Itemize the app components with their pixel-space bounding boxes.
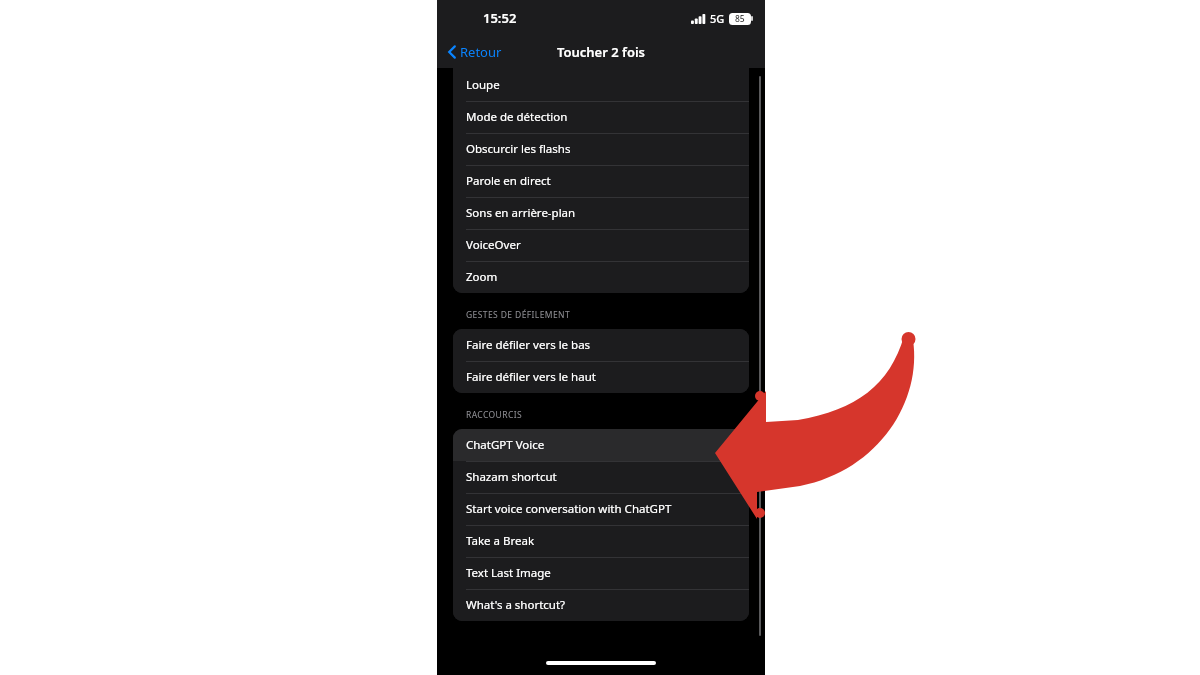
button[interactable]: Shazam shortcut (453, 461, 749, 493)
staticText: Retour (460, 43, 502, 61)
staticText: 5G (710, 11, 725, 26)
staticText: GESTES DE DÉFILEMENT (466, 309, 571, 321)
staticText: 15:52 (483, 9, 517, 27)
button[interactable]: Faire défiler vers le bas (453, 329, 749, 361)
staticText: Loupe (466, 77, 500, 93)
staticText: Zoom (466, 269, 498, 285)
staticText: Mode de détection (466, 109, 568, 125)
staticText: Text Last Image (466, 565, 551, 581)
staticText: Faire défiler vers le haut (466, 369, 596, 385)
button[interactable]: Zoom (453, 261, 749, 293)
button[interactable]: Start voice conversation with ChatGPT (453, 493, 749, 525)
staticText: ChatGPT Voice (466, 437, 545, 453)
button[interactable]: Obscurcir les flashs (453, 133, 749, 165)
staticText: Parole en direct (466, 173, 551, 189)
staticText: 85 (735, 13, 745, 25)
button[interactable]: Faire défiler vers le haut (453, 361, 749, 393)
button[interactable]: ChatGPT Voice (453, 429, 749, 461)
staticText: Sons en arrière-plan (466, 205, 576, 221)
button[interactable]: VoiceOver (453, 229, 749, 261)
button[interactable]: Text Last Image (453, 557, 749, 589)
staticText: Toucher 2 fois (557, 43, 645, 61)
staticText: Take a Break (466, 533, 535, 549)
button[interactable]: Sons en arrière-plan (453, 197, 749, 229)
other: Arrow pointing to ChatGPT Voice (0, 0, 1200, 675)
button[interactable]: Loupe (453, 68, 749, 101)
button[interactable]: Mode de détection (453, 101, 749, 133)
button[interactable]: Take a Break (453, 525, 749, 557)
staticText: What's a shortcut? (466, 597, 566, 613)
button[interactable]: Retour (445, 40, 505, 64)
staticText: Start voice conversation with ChatGPT (466, 501, 672, 517)
staticText: RACCOURCIS (466, 409, 523, 421)
button[interactable]: What's a shortcut? (453, 589, 749, 621)
button[interactable]: Parole en direct (453, 165, 749, 197)
staticText: Faire défiler vers le bas (466, 337, 591, 353)
staticText: Obscurcir les flashs (466, 141, 571, 157)
staticText: VoiceOver (466, 237, 521, 253)
staticText: Shazam shortcut (466, 469, 557, 485)
